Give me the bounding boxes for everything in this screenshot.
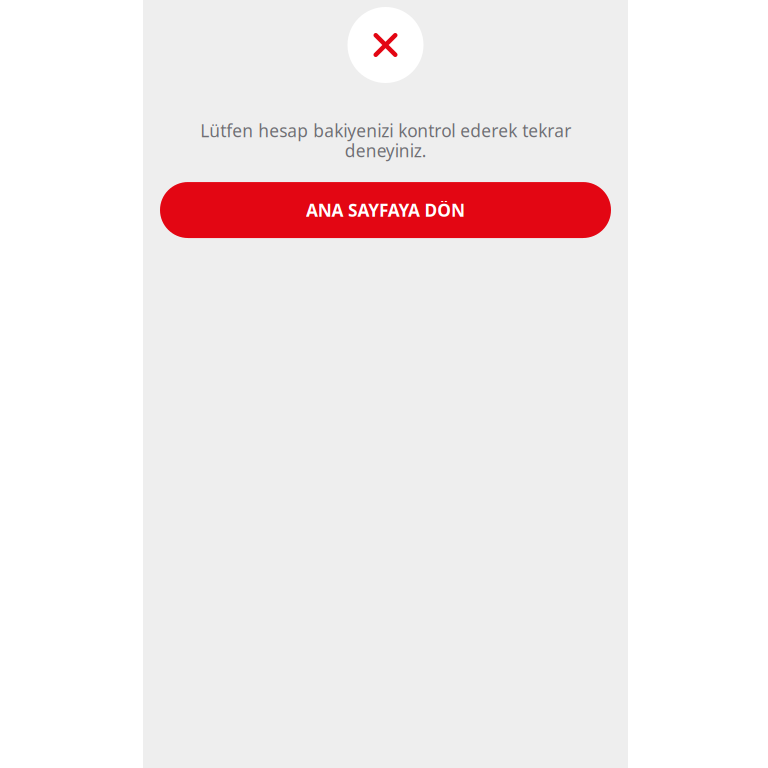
staticText: ANA SAYFAYA DÖN [306,198,465,221]
staticText: Lütfen hesap bakiyenizi kontrol ederek t… [200,119,571,162]
button[interactable]: ANA SAYFAYA DÖN [160,182,611,238]
